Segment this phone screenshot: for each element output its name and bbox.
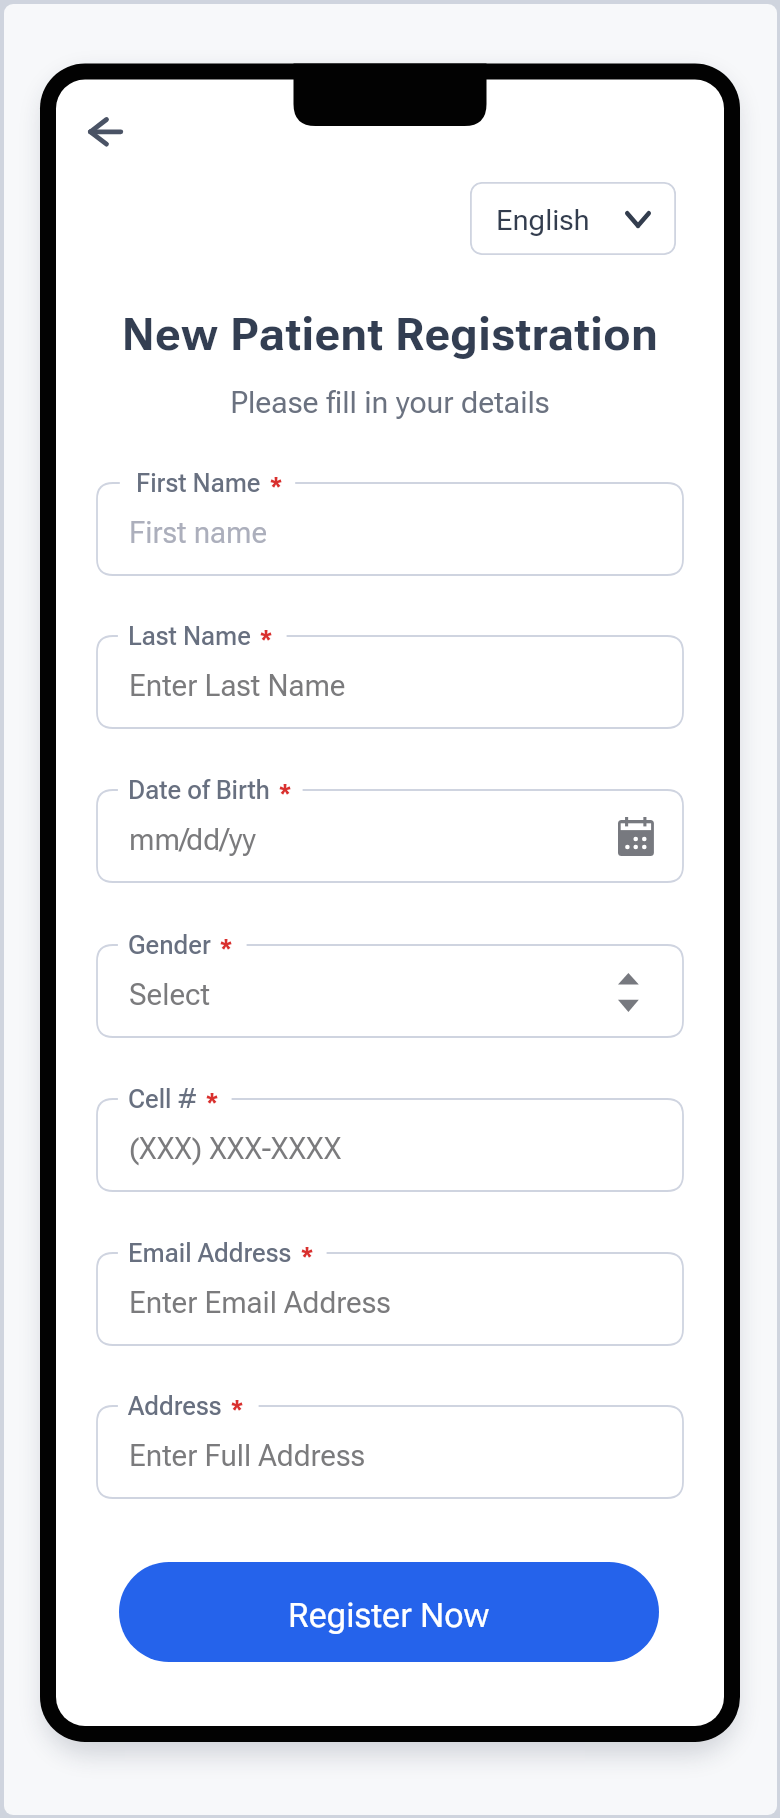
button[interactable]: Enter Last Name — [97, 636, 683, 728]
button[interactable]: (XXX) XXX-XXXX — [97, 1099, 683, 1191]
staticText: Enter Full Address — [129, 1439, 366, 1474]
staticText: Select — [129, 978, 210, 1013]
staticText: First Name — [136, 469, 261, 499]
staticText: Enter Email Address — [129, 1286, 391, 1321]
staticText: Email Address — [128, 1239, 292, 1269]
button[interactable]: Back — [76, 104, 136, 160]
button[interactable]: Select — [97, 945, 683, 1037]
staticText: (XXX) XXX-XXXX — [129, 1132, 342, 1167]
staticText: Gender — [128, 931, 211, 961]
staticText: Enter Last Name — [129, 669, 346, 704]
button[interactable]: mm/dd/yy — [97, 790, 683, 882]
button[interactable]: Enter Email Address — [97, 1253, 683, 1345]
staticText: Date of Birth — [128, 776, 270, 806]
staticText: Last Name — [128, 622, 251, 652]
staticText: English — [496, 203, 590, 237]
staticText: Register Now — [288, 1595, 490, 1635]
staticText: Address — [128, 1392, 222, 1422]
button[interactable]: English — [470, 182, 676, 255]
staticText: * — [260, 626, 273, 652]
staticText: * — [279, 780, 292, 806]
button[interactable]: First name — [97, 483, 683, 575]
staticText: * — [231, 1396, 244, 1422]
staticText: * — [206, 1089, 219, 1115]
staticText: Cell # — [128, 1085, 197, 1115]
staticText: New Patient Registration — [56, 308, 724, 361]
staticText: mm/dd/yy — [129, 823, 256, 858]
staticText: * — [301, 1243, 314, 1269]
staticText: First name — [129, 516, 268, 551]
staticText: Please fill in your details — [56, 385, 724, 420]
button[interactable]: Register Now — [119, 1562, 659, 1662]
staticText: * — [220, 935, 233, 961]
staticText: * — [270, 473, 283, 499]
button[interactable]: Enter Full Address — [97, 1406, 683, 1498]
